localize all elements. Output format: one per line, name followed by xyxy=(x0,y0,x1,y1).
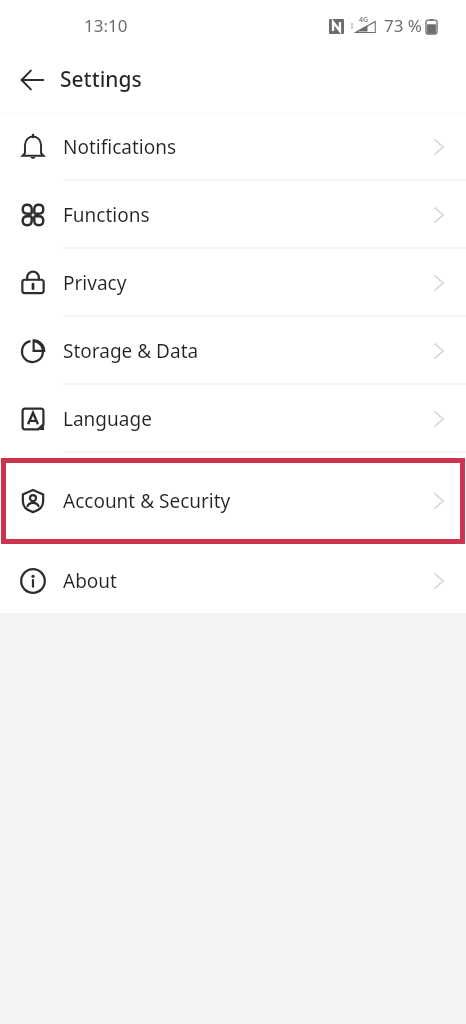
staticText: Language xyxy=(63,406,152,432)
staticText: Functions xyxy=(63,202,150,228)
button[interactable]: Account & Security xyxy=(0,453,466,549)
button[interactable]: Privacy xyxy=(0,249,466,317)
staticText: Account & Security xyxy=(63,488,231,514)
button[interactable]: Storage & Data xyxy=(0,317,466,385)
button[interactable]: Functions xyxy=(0,181,466,249)
staticText: Settings xyxy=(60,65,142,94)
staticText: 13:10 xyxy=(84,14,128,37)
button[interactable]: Back xyxy=(10,58,54,102)
button[interactable]: Language xyxy=(0,385,466,453)
button[interactable]: Notifications xyxy=(0,113,466,181)
staticText: Privacy xyxy=(63,270,127,296)
staticText: Notifications xyxy=(63,134,177,160)
staticText: Storage & Data xyxy=(63,338,199,364)
staticText: 4G xyxy=(359,15,369,25)
staticText: About xyxy=(63,568,117,594)
button[interactable]: About xyxy=(0,549,466,613)
staticText: 73 % xyxy=(384,14,422,37)
